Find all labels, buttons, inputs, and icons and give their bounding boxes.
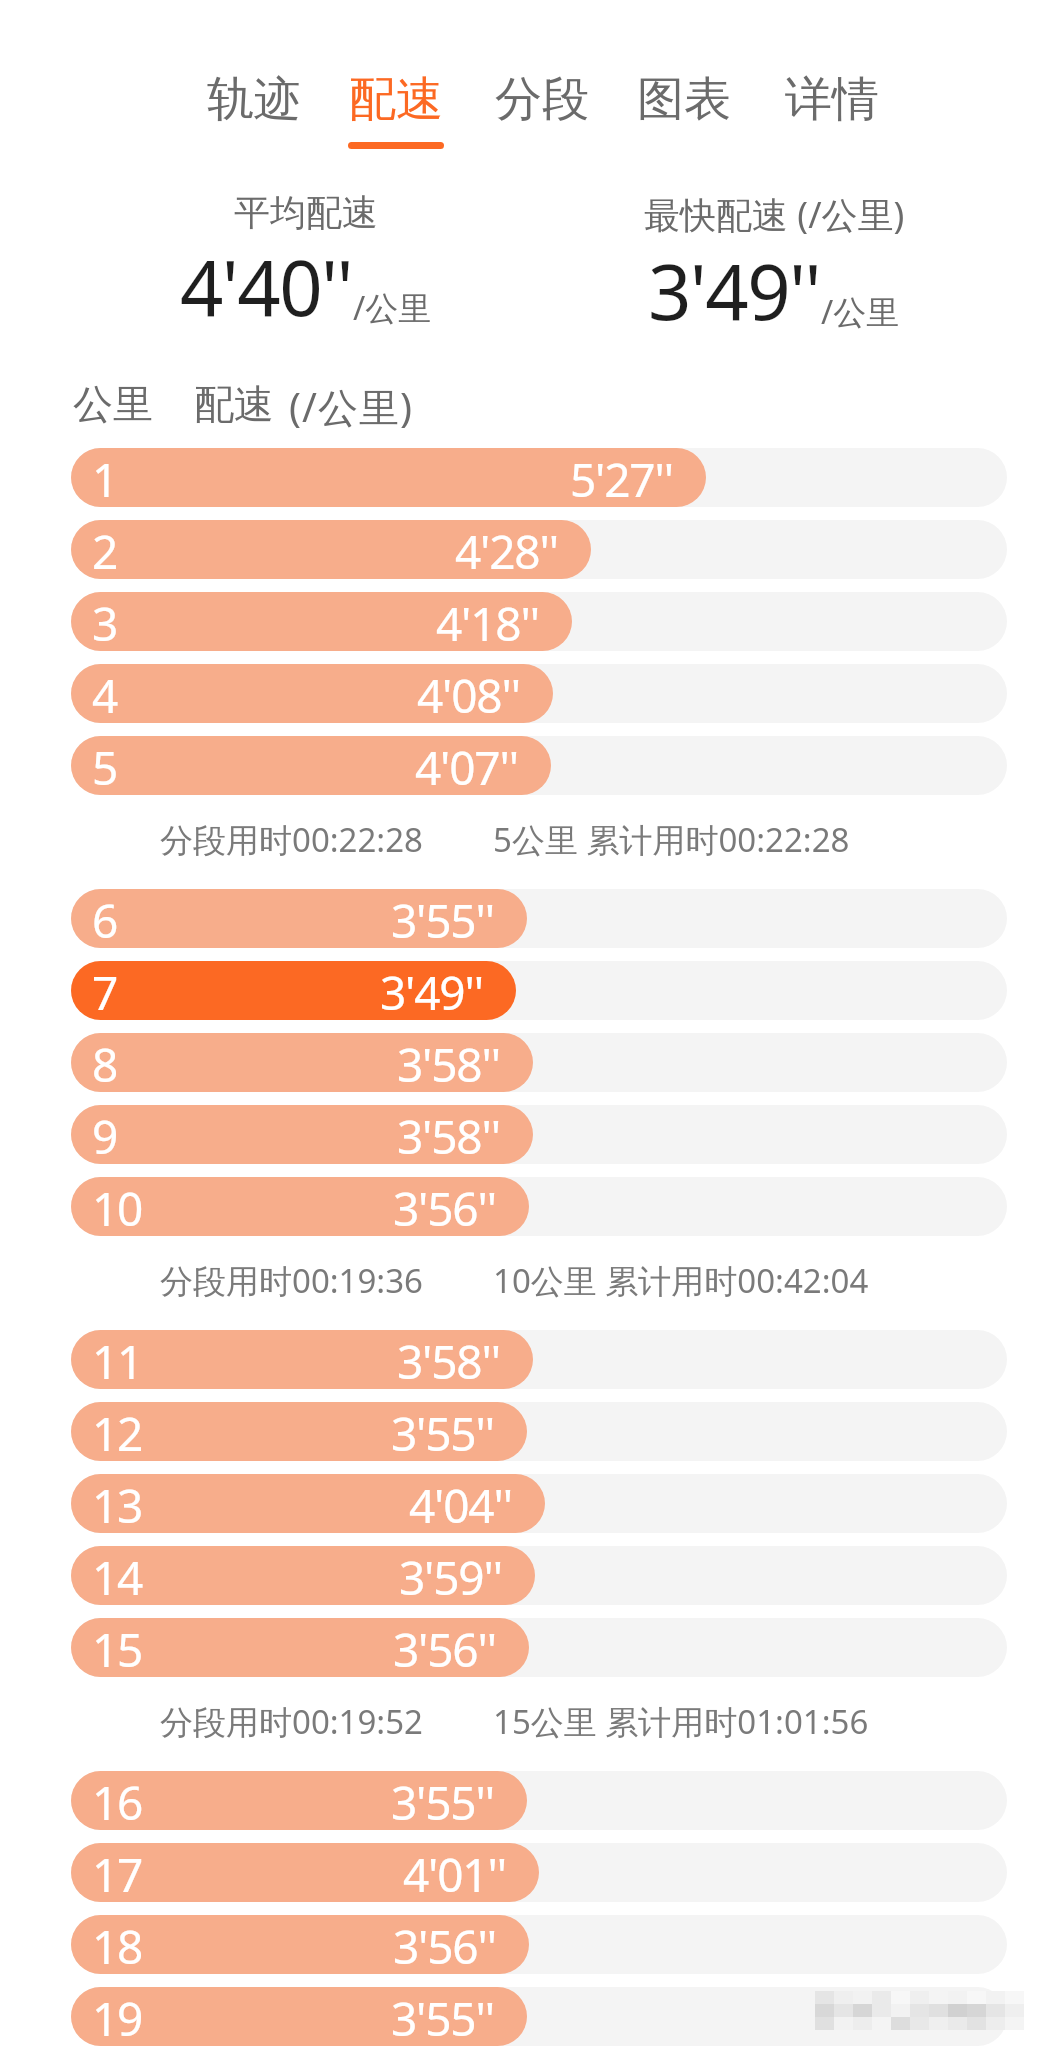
staticText: 分段 xyxy=(495,70,589,129)
staticText: 19 xyxy=(92,1987,143,2046)
staticText: 5公里 累计用时00:22:28 xyxy=(493,817,850,862)
staticText: 3'56'' xyxy=(393,1177,496,1236)
staticText: 3'49'' xyxy=(380,961,483,1020)
button[interactable]: 14 xyxy=(71,1546,1007,1605)
staticText: 18 xyxy=(92,1915,143,1974)
staticText: 15公里 累计用时01:01:56 xyxy=(493,1699,869,1744)
staticText: 5 xyxy=(92,736,118,795)
staticText: 3'59'' xyxy=(399,1546,502,1605)
button[interactable]: 6 xyxy=(71,889,1007,948)
staticText: /公里 xyxy=(353,285,432,330)
staticText: 4'04'' xyxy=(409,1474,512,1533)
staticText: 3'55'' xyxy=(391,889,494,948)
button[interactable]: 平均配速 xyxy=(0,190,612,339)
staticText: 3'58'' xyxy=(397,1105,500,1164)
other: Watermark xyxy=(815,1991,1024,2030)
staticText: 分段用时00:19:36 xyxy=(160,1258,423,1303)
staticText: 4'08'' xyxy=(417,664,520,723)
button[interactable]: 18 xyxy=(71,1915,1007,1974)
staticText: (/公里) xyxy=(289,379,413,434)
staticText: 3'56'' xyxy=(393,1618,496,1677)
staticText: /公里 xyxy=(821,289,900,334)
button[interactable]: 15 xyxy=(71,1618,1007,1677)
staticText: 10 xyxy=(92,1177,143,1236)
button[interactable]: 16 xyxy=(71,1771,1007,1830)
button[interactable]: 分段 xyxy=(474,60,609,160)
button[interactable]: 详情 xyxy=(764,60,899,160)
staticText: 3'56'' xyxy=(393,1915,496,1974)
staticText: 5'27'' xyxy=(570,448,673,507)
staticText: 4 xyxy=(92,664,118,723)
staticText: 图表 xyxy=(637,70,731,129)
staticText: 10公里 累计用时00:42:04 xyxy=(493,1258,869,1303)
staticText: 3'55'' xyxy=(391,1771,494,1830)
button[interactable]: 13 xyxy=(71,1474,1007,1533)
staticText: 分段用时00:22:28 xyxy=(160,817,423,862)
staticText: 4'28'' xyxy=(455,520,558,579)
staticText: 配速 xyxy=(349,70,443,129)
button[interactable]: 7 xyxy=(71,961,1007,1020)
staticText: 6 xyxy=(92,889,118,948)
button[interactable]: 19 xyxy=(71,1987,1007,2046)
button[interactable]: 12 xyxy=(71,1402,1007,1461)
staticText: 分段用时00:19:52 xyxy=(160,1699,423,1744)
staticText: 9 xyxy=(92,1105,118,1164)
staticText: 14 xyxy=(92,1546,143,1605)
button[interactable]: 10 xyxy=(71,1177,1007,1236)
staticText: 8 xyxy=(92,1033,118,1092)
button[interactable]: 5 xyxy=(71,736,1007,795)
button[interactable]: 11 xyxy=(71,1330,1007,1389)
staticText: 3'58'' xyxy=(397,1330,500,1389)
button[interactable]: 1 xyxy=(71,448,1007,507)
staticText: 轨迹 xyxy=(207,70,301,129)
button[interactable]: 最快配速 (/公里) xyxy=(468,190,1039,343)
staticText: 4'07'' xyxy=(415,736,518,795)
staticText: 详情 xyxy=(785,70,879,129)
button[interactable]: 2 xyxy=(71,520,1007,579)
staticText: 3'55'' xyxy=(391,1987,494,2046)
button[interactable]: 8 xyxy=(71,1033,1007,1092)
staticText: 17 xyxy=(92,1843,143,1902)
staticText: 3'58'' xyxy=(397,1033,500,1092)
button[interactable]: 轨迹 xyxy=(186,60,321,160)
staticText: 4'18'' xyxy=(436,592,539,651)
staticText: 平均配速 xyxy=(234,190,378,235)
staticText: 4'40'' xyxy=(180,235,353,339)
staticText: 3'55'' xyxy=(391,1402,494,1461)
staticText: 公里 xyxy=(73,379,153,429)
button[interactable]: 17 xyxy=(71,1843,1007,1902)
staticText: 11 xyxy=(92,1330,143,1389)
staticText: 12 xyxy=(92,1402,143,1461)
button[interactable]: 9 xyxy=(71,1105,1007,1164)
staticText: 3 xyxy=(92,592,118,651)
staticText: 配速 xyxy=(194,379,274,429)
button[interactable]: 3 xyxy=(71,592,1007,651)
staticText: 最快配速 (/公里) xyxy=(644,190,905,239)
button[interactable]: 图表 xyxy=(616,60,751,160)
staticText: 2 xyxy=(92,520,118,579)
staticText: 1 xyxy=(92,448,118,507)
staticText: 15 xyxy=(92,1618,143,1677)
staticText: 4'01'' xyxy=(403,1843,506,1902)
staticText: 13 xyxy=(92,1474,143,1533)
staticText: 3'49'' xyxy=(648,239,821,343)
staticText: 16 xyxy=(92,1771,143,1830)
button[interactable]: 4 xyxy=(71,664,1007,723)
button[interactable]: 配速 xyxy=(328,60,463,160)
staticText: 7 xyxy=(92,961,118,1020)
